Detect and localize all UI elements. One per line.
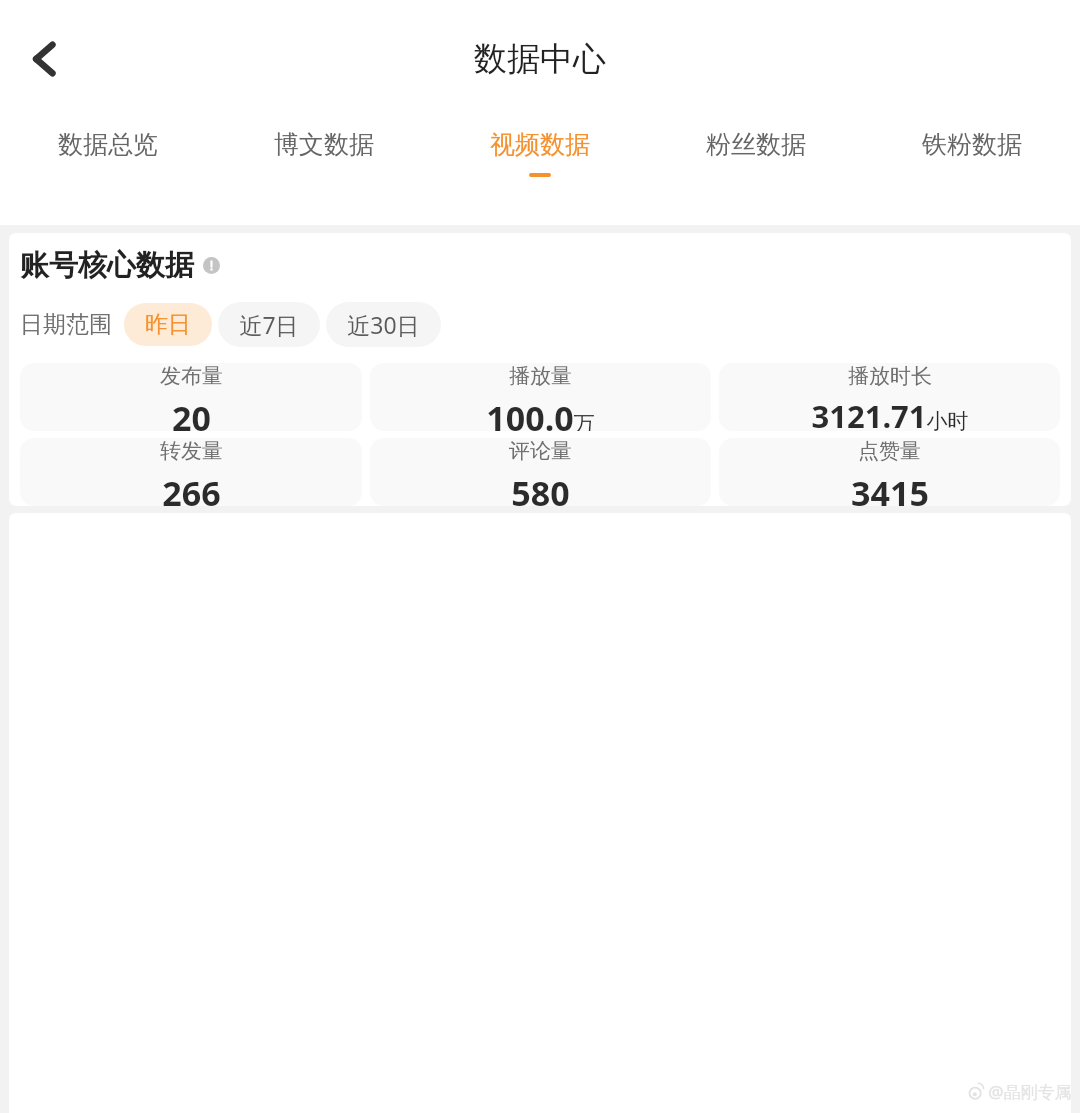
button[interactable]: 转发量 bbox=[20, 438, 362, 506]
staticText: 视频数据 bbox=[490, 129, 590, 160]
staticText: 发布量 bbox=[160, 363, 223, 389]
staticText: 点赞量 bbox=[858, 438, 921, 464]
staticText: 数据中心 bbox=[474, 38, 606, 80]
staticText: 账号核心数据 bbox=[20, 247, 194, 284]
staticText: 昨日 bbox=[145, 310, 191, 339]
button[interactable]: 近7日 bbox=[218, 302, 320, 347]
button[interactable]: 昨日 bbox=[124, 303, 212, 346]
staticText: 3415 bbox=[851, 470, 929, 506]
staticText: 铁粉数据 bbox=[922, 129, 1022, 160]
staticText: 博文数据 bbox=[274, 129, 374, 160]
button[interactable]: 近30日 bbox=[326, 302, 441, 347]
button[interactable]: 粉丝数据 bbox=[648, 118, 864, 173]
button[interactable]: 播放量 bbox=[370, 363, 711, 431]
button[interactable]: Back bbox=[14, 28, 76, 90]
staticText: 播放时长 bbox=[848, 363, 932, 389]
staticText: 日期范围 bbox=[20, 310, 112, 339]
staticText: 粉丝数据 bbox=[706, 129, 806, 160]
button[interactable]: 博文数据 bbox=[216, 118, 432, 173]
staticText: 播放量 bbox=[509, 363, 572, 389]
staticText: 近30日 bbox=[347, 309, 420, 340]
staticText: 20 bbox=[172, 395, 211, 431]
staticText: 3121.71小时 bbox=[811, 395, 969, 431]
button[interactable]: 播放时长 bbox=[719, 363, 1060, 431]
button[interactable]: 视频数据 bbox=[432, 118, 648, 177]
staticText: 580 bbox=[511, 470, 570, 506]
button[interactable]: Info bbox=[203, 257, 220, 274]
staticText: 转发量 bbox=[160, 438, 223, 464]
staticText: 评论量 bbox=[509, 438, 572, 464]
staticText: 数据总览 bbox=[58, 129, 158, 160]
button[interactable]: 点赞量 bbox=[719, 438, 1060, 506]
staticText: 100.0万 bbox=[486, 395, 595, 431]
staticText: 266 bbox=[162, 470, 221, 506]
button[interactable]: 发布量 bbox=[20, 363, 362, 431]
staticText: @晶刚专属 bbox=[988, 1080, 1072, 1103]
button[interactable]: 数据总览 bbox=[0, 118, 216, 173]
staticText: 近7日 bbox=[239, 309, 299, 340]
button[interactable]: 评论量 bbox=[370, 438, 711, 506]
button[interactable]: 铁粉数据 bbox=[864, 118, 1080, 173]
